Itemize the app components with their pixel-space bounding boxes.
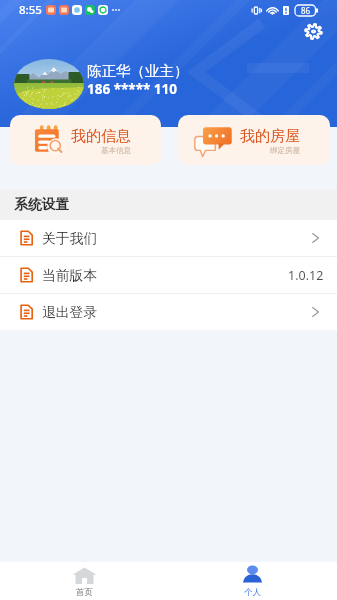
staticText: 系统设置 <box>14 196 70 213</box>
button[interactable]: 关于我们 <box>0 220 337 256</box>
button[interactable]: Settings <box>304 23 323 40</box>
staticText: 首页 <box>76 587 93 598</box>
staticText: 当前版本 <box>42 267 98 284</box>
staticText: 186 ***** 110 <box>87 80 177 98</box>
button[interactable]: 退出登录 <box>0 294 337 330</box>
staticText: 基本信息 <box>101 146 131 155</box>
button[interactable]: 首页 <box>0 562 168 600</box>
staticText: 陈正华（业主） <box>87 62 189 80</box>
staticText: 1.0.12 <box>288 267 324 284</box>
staticText: 我的房屋 <box>240 127 300 146</box>
staticText: 个人 <box>244 587 261 598</box>
staticText: 86 <box>301 5 311 16</box>
staticText: 我的信息 <box>71 127 131 146</box>
staticText: 退出登录 <box>42 304 98 321</box>
button[interactable]: 个人 <box>168 562 337 600</box>
button[interactable]: 我的信息 <box>10 115 161 165</box>
button[interactable]: 当前版本 <box>0 257 337 293</box>
button[interactable]: 我的房屋 <box>178 115 330 165</box>
staticText: 绑定房屋 <box>270 146 300 155</box>
staticText: 8:55 <box>19 2 42 18</box>
staticText: 关于我们 <box>42 230 98 247</box>
